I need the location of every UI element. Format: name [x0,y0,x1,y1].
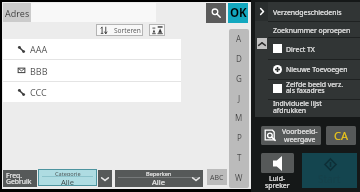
button[interactable]: Voorbeeld- [261,126,321,145]
button[interactable]: Beperken [115,170,203,187]
button[interactable]: W [229,168,249,188]
staticText: A [236,33,242,44]
staticText: Verzendgeschiedenis [273,8,342,17]
staticText: Gebruik [6,177,32,186]
button[interactable]: D [229,49,249,69]
staticText: W [235,172,243,183]
button[interactable]: Individuele lijst [255,99,360,116]
button[interactable]: Categorie [39,170,96,185]
staticText: BBB [30,65,48,77]
staticText: CA [334,128,348,143]
button[interactable]: Direct TX [255,38,360,60]
staticText: Alle [152,177,166,187]
staticText: Beperken [146,170,172,178]
staticText: Zelfde beeld verz. [286,80,344,89]
button[interactable]: Expand category [98,170,112,187]
staticText: J [238,93,241,104]
button[interactable]: J [229,89,249,109]
button[interactable]: Start [302,153,357,188]
button[interactable]: AAA [3,39,181,59]
button[interactable]: Collapse [257,38,267,49]
button[interactable]: G [229,69,249,89]
staticText: Alle [61,177,75,187]
button[interactable]: Zelfde beeld verz. [255,79,360,98]
button[interactable]: Nieuwe Toevoegen [255,60,360,79]
button[interactable]: A [229,29,249,49]
button[interactable]: Speaker [261,153,294,173]
button[interactable]: ABC [207,169,227,185]
staticText: Voorbeeld- [282,127,318,136]
button[interactable]: M [229,108,249,128]
button[interactable]: Zoeknummer oproepen [255,22,360,37]
staticText: Adres [5,7,30,19]
staticText: AAA [30,43,48,55]
staticText: M [235,112,243,123]
staticText: Freq. [6,171,23,180]
staticText: P [237,132,242,143]
staticText: Direct TX [286,45,315,54]
button[interactable]: Text size [149,24,165,36]
button[interactable]: Sorteren [96,24,143,36]
staticText: Sorteren [114,26,141,35]
staticText: ABC [210,173,224,183]
button[interactable]: Freq. [3,170,37,187]
staticText: Individuele lijst [273,99,322,108]
button[interactable]: OK [228,3,248,23]
button[interactable]: BBB [3,60,181,81]
staticText: als faxadres [286,86,325,95]
staticText: Categorie [55,170,81,178]
staticText: G [236,73,242,84]
staticText: Zoeknummer oproepen [273,26,351,35]
button[interactable]: CA [326,126,356,145]
button[interactable]: P [229,128,249,148]
button[interactable]: CCC [3,82,181,102]
staticText: D [236,53,242,64]
staticText: CCC [30,86,47,98]
button[interactable]: Verzendgeschiedenis [255,2,360,21]
staticText: spreker [265,181,290,190]
staticText: weergave [284,135,316,144]
staticText: T [237,152,242,163]
staticText: OK [230,5,247,21]
staticText: Luid- [269,174,286,183]
staticText: afdrukken [273,106,307,115]
button[interactable]: Search [206,3,226,23]
staticText: Nieuwe Toevoegen [286,65,348,74]
button[interactable]: Adres [3,3,31,22]
button[interactable]: T [229,148,249,168]
